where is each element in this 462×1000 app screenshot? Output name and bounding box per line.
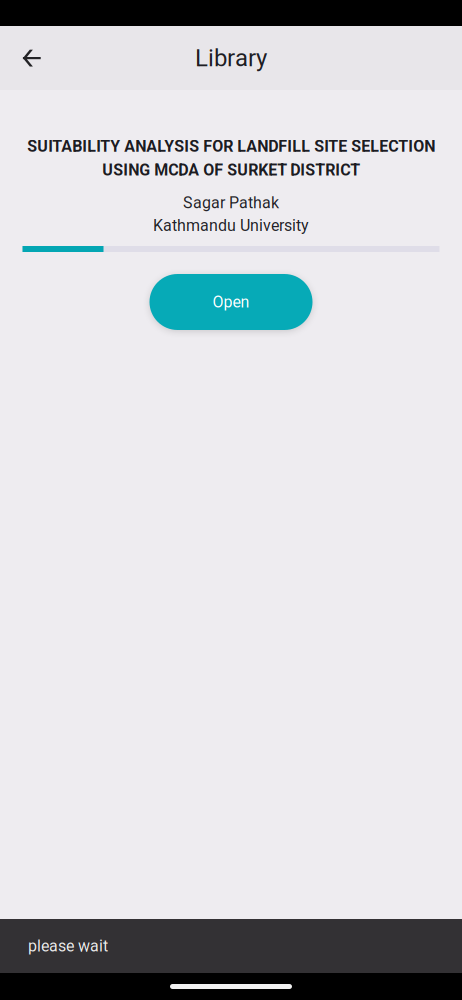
button[interactable]: Back — [0, 30, 63, 86]
staticText: SUITABILITY ANALYSIS FOR LANDFILL SITE S… — [27, 137, 435, 179]
staticText: Open — [212, 293, 249, 311]
staticText: please wait — [28, 937, 108, 955]
staticText: Kathmandu University — [153, 216, 309, 235]
staticText: Sagar Pathak — [183, 193, 279, 212]
staticText: Library — [195, 44, 267, 72]
button[interactable]: Open — [149, 274, 312, 330]
